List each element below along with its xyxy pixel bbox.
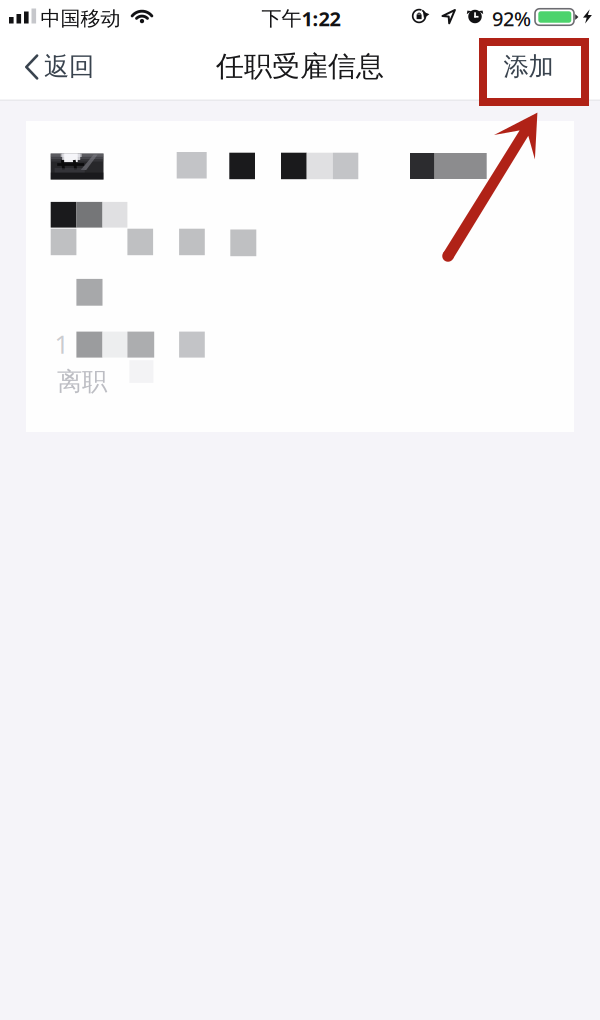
staticText: 下午 [261,6,301,31]
button[interactable]: 添加 [481,42,575,90]
staticText: 添加 [503,51,553,82]
staticText: 92% [492,5,531,32]
button[interactable]: 返回 [16,43,102,91]
staticText: 1 [54,327,68,361]
staticText: 任职受雇信息 [216,49,384,84]
staticText: 1:22 [301,5,340,32]
staticText: 返回 [44,51,94,82]
staticText: 中国移动 [40,6,120,31]
staticText: 离职 [57,366,107,397]
